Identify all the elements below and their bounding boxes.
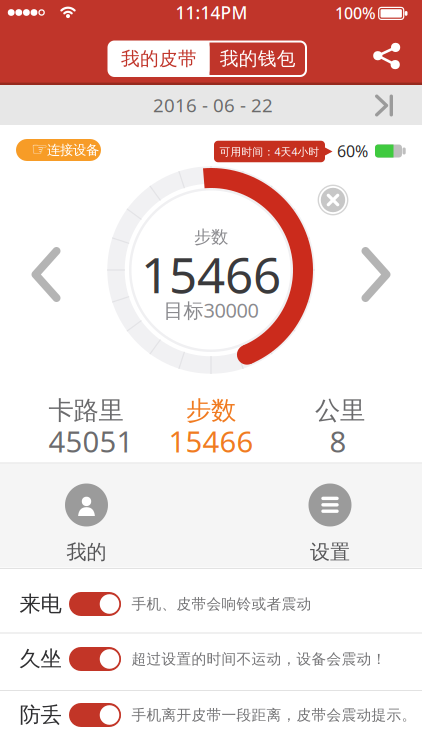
staticText: 步数: [186, 395, 236, 426]
staticText: 我的皮带: [121, 47, 197, 70]
staticText: 2016 - 06 - 22: [153, 93, 273, 117]
staticText: 8: [329, 421, 346, 460]
button[interactable]: 我的钱包: [209, 41, 306, 76]
staticText: 15466: [168, 421, 253, 460]
button[interactable]: Next date: [374, 94, 394, 117]
staticText: 超过设置的时间不运动，设备会震动！: [131, 650, 386, 668]
staticText: 来电: [19, 591, 61, 617]
staticText: 久坐: [19, 646, 61, 672]
button[interactable]: Share: [373, 43, 401, 69]
staticText: 100%: [335, 2, 376, 24]
staticText: 45051: [48, 421, 133, 460]
staticText: 手机、皮带会响铃或者震动: [131, 595, 311, 613]
staticText: 连接设备: [47, 142, 99, 158]
button[interactable]: 设置: [290, 483, 370, 569]
button[interactable]: Next: [361, 247, 390, 302]
button[interactable]: Previous: [31, 247, 60, 302]
button[interactable]: 来电: [69, 592, 121, 616]
staticText: 15466: [141, 241, 281, 307]
staticText: 设置: [310, 540, 350, 564]
staticText: 卡路里: [48, 395, 123, 426]
staticText: 步数: [194, 226, 228, 248]
button[interactable]: 久坐: [69, 647, 121, 671]
staticText: 防丢: [19, 702, 61, 728]
staticText: 60%: [337, 140, 368, 162]
staticText: 可用时间：4天4小时: [219, 144, 319, 159]
staticText: ☞: [31, 138, 48, 160]
button[interactable]: 我的皮带: [108, 41, 209, 76]
button[interactable]: ☞: [16, 139, 101, 161]
staticText: 我的: [66, 540, 106, 564]
button[interactable]: 防丢: [69, 703, 121, 727]
button[interactable]: 我的: [46, 483, 126, 569]
staticText: 11:14PM: [175, 1, 247, 24]
staticText: 公里: [315, 395, 365, 426]
button[interactable]: Close: [317, 184, 348, 215]
staticText: 目标30000: [163, 297, 258, 323]
staticText: 手机离开皮带一段距离，皮带会震动提示。: [131, 706, 416, 724]
staticText: 我的钱包: [220, 47, 296, 70]
